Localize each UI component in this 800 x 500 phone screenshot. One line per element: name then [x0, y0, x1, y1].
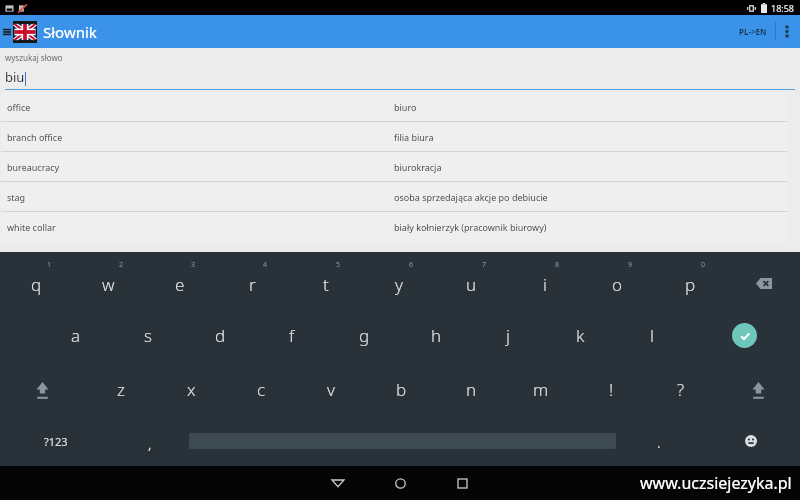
- staticText: f: [289, 324, 295, 347]
- staticText: stag: [7, 191, 26, 203]
- button[interactable]: 9: [581, 252, 654, 308]
- staticText: bureaucracy: [7, 161, 60, 173]
- staticText: 6: [409, 260, 414, 270]
- button[interactable]: 3: [144, 252, 216, 308]
- button[interactable]: branch office: [1, 122, 787, 151]
- button[interactable]: Space: [189, 416, 616, 466]
- button[interactable]: Enter: [688, 308, 800, 362]
- staticText: i: [543, 273, 547, 296]
- button[interactable]: More options: [776, 15, 797, 48]
- staticText: u: [466, 273, 477, 296]
- staticText: .: [657, 434, 661, 452]
- button[interactable]: Backspace: [727, 252, 800, 308]
- staticText: r: [249, 273, 256, 296]
- button[interactable]: PL->EN: [731, 15, 775, 48]
- staticText: p: [685, 273, 696, 296]
- staticText: h: [431, 324, 442, 347]
- staticText: ,: [148, 435, 152, 453]
- button[interactable]: bureaucracy: [1, 152, 787, 181]
- staticText: 0: [701, 260, 706, 270]
- button[interactable]: v: [296, 362, 366, 416]
- button[interactable]: c: [226, 362, 296, 416]
- staticText: n: [466, 378, 477, 401]
- button[interactable]: j: [472, 308, 544, 362]
- staticText: o: [612, 273, 623, 296]
- staticText: d: [215, 324, 226, 347]
- button[interactable]: g: [328, 308, 400, 362]
- button[interactable]: l: [616, 308, 688, 362]
- staticText: m: [533, 378, 549, 401]
- button[interactable]: Shift: [0, 362, 85, 416]
- button[interactable]: x: [156, 362, 226, 416]
- button[interactable]: a: [40, 308, 112, 362]
- button[interactable]: n: [436, 362, 506, 416]
- staticText: y: [395, 273, 403, 296]
- button[interactable]: wyszukaj słowo: [0, 48, 800, 90]
- staticText: 4: [263, 260, 268, 270]
- button[interactable]: Back: [307, 466, 369, 500]
- staticText: PL->EN: [739, 26, 767, 37]
- staticText: 9: [628, 260, 633, 270]
- button[interactable]: white collar: [1, 212, 787, 241]
- staticText: w: [102, 273, 115, 296]
- staticText: b: [396, 378, 407, 401]
- staticText: wyszukaj słowo: [5, 52, 63, 63]
- button[interactable]: Recent apps: [431, 466, 493, 500]
- staticText: c: [257, 378, 266, 401]
- button[interactable]: z: [85, 362, 156, 416]
- staticText: v: [327, 378, 335, 401]
- staticText: g: [359, 324, 370, 347]
- button[interactable]: stag: [1, 182, 787, 211]
- staticText: white collar: [7, 221, 56, 233]
- button[interactable]: 4: [216, 252, 289, 308]
- staticText: 18:58: [771, 2, 795, 14]
- button[interactable]: ?: [646, 362, 716, 416]
- button[interactable]: office: [1, 92, 787, 121]
- staticText: 1: [47, 260, 52, 270]
- staticText: t: [323, 273, 329, 296]
- button[interactable]: ?123: [0, 416, 111, 466]
- button[interactable]: 6: [362, 252, 435, 308]
- button[interactable]: f: [256, 308, 328, 362]
- button[interactable]: m: [506, 362, 576, 416]
- staticText: q: [31, 273, 42, 296]
- button[interactable]: .: [616, 416, 702, 466]
- staticText: k: [576, 324, 585, 347]
- button[interactable]: b: [366, 362, 436, 416]
- staticText: biały kołnierzyk (pracownik biurowy): [394, 221, 547, 233]
- staticText: filia biura: [394, 131, 434, 143]
- button[interactable]: 1: [0, 252, 72, 308]
- button[interactable]: s: [112, 308, 184, 362]
- staticText: Słownik: [43, 22, 97, 42]
- button[interactable]: 7: [435, 252, 508, 308]
- button[interactable]: k: [544, 308, 616, 362]
- staticText: ?: [677, 378, 685, 401]
- button[interactable]: Emoji: [702, 416, 800, 466]
- staticText: office: [7, 101, 31, 113]
- button[interactable]: d: [184, 308, 256, 362]
- staticText: ?123: [44, 434, 68, 449]
- staticText: biuro: [394, 101, 417, 113]
- button[interactable]: 5: [289, 252, 362, 308]
- staticText: biu: [5, 68, 25, 86]
- staticText: x: [187, 378, 196, 401]
- staticText: 8: [555, 260, 560, 270]
- staticText: s: [144, 324, 152, 347]
- button[interactable]: Home: [369, 466, 431, 500]
- staticText: 3: [191, 260, 196, 270]
- staticText: !: [609, 378, 614, 401]
- button[interactable]: Shift: [716, 362, 800, 416]
- staticText: osoba sprzedająca akcje po debiucie: [394, 191, 548, 203]
- button[interactable]: Source language flag: [12, 19, 38, 45]
- staticText: branch office: [7, 131, 63, 143]
- staticText: 5: [336, 260, 341, 270]
- button[interactable]: Navigation menu: [1, 15, 12, 48]
- button[interactable]: 8: [508, 252, 581, 308]
- button[interactable]: 0: [654, 252, 727, 308]
- staticText: z: [117, 378, 125, 401]
- button[interactable]: 2: [72, 252, 144, 308]
- button[interactable]: !: [576, 362, 646, 416]
- button[interactable]: ,: [111, 416, 189, 466]
- button[interactable]: h: [400, 308, 472, 362]
- staticText: biurokracja: [394, 161, 442, 173]
